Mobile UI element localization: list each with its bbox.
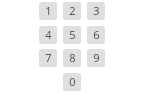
button[interactable]: Digit 5 — [63, 26, 81, 44]
button[interactable]: Digit 4 — [39, 26, 57, 44]
staticText: 7 — [45, 50, 52, 65]
button[interactable]: Digit 9 — [87, 49, 105, 67]
button[interactable]: Digit 6 — [87, 26, 105, 44]
staticText: 2 — [69, 3, 76, 18]
staticText: 0 — [69, 74, 76, 89]
staticText: 8 — [69, 50, 76, 65]
staticText: 6 — [93, 27, 100, 42]
button[interactable]: Digit 7 — [39, 49, 57, 67]
staticText: 3 — [93, 3, 100, 18]
button[interactable]: Digit 3 — [87, 2, 105, 20]
staticText: 5 — [69, 27, 76, 42]
button[interactable]: Digit 1 — [39, 2, 57, 20]
button[interactable]: Digit 8 — [63, 49, 81, 67]
staticText: 9 — [93, 50, 100, 65]
staticText: 4 — [45, 27, 52, 42]
button[interactable]: Digit 2 — [63, 2, 81, 20]
button[interactable]: Digit 0 — [63, 73, 81, 91]
staticText: 1 — [45, 3, 52, 18]
